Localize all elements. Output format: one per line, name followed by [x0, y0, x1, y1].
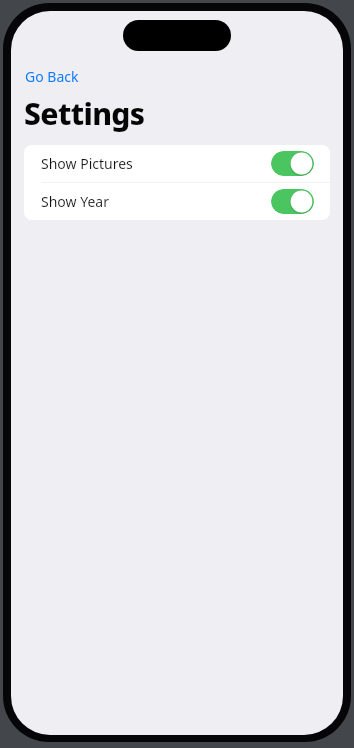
staticText: Go Back [25, 67, 79, 86]
staticText: Show Year [41, 192, 109, 211]
button[interactable]: Toggle Show Pictures [271, 151, 314, 176]
button[interactable]: Go Back [23, 66, 81, 87]
button[interactable]: Toggle Show Year [271, 189, 314, 214]
button[interactable]: Show Year [24, 183, 330, 220]
button[interactable]: Show Pictures [24, 145, 330, 182]
staticText: Show Pictures [41, 154, 133, 173]
staticText: Settings [24, 93, 145, 134]
